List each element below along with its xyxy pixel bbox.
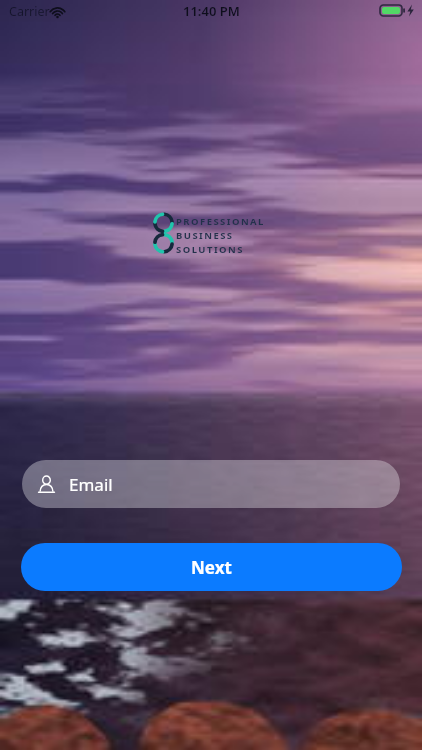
staticText: Email — [69, 473, 113, 496]
staticText: Carrier — [9, 3, 50, 20]
other: Wi-Fi signal — [50, 5, 65, 20]
staticText: BUSINESS — [176, 229, 234, 243]
staticText: 11:40 PM — [183, 2, 240, 20]
staticText: SOLUTIONS — [176, 243, 244, 257]
button[interactable]: Email — [22, 460, 400, 508]
staticText: Next — [191, 556, 232, 579]
staticText: PROFESSIONAL — [176, 215, 265, 229]
button[interactable]: Next — [21, 543, 402, 591]
other: Battery charging — [380, 5, 418, 16]
